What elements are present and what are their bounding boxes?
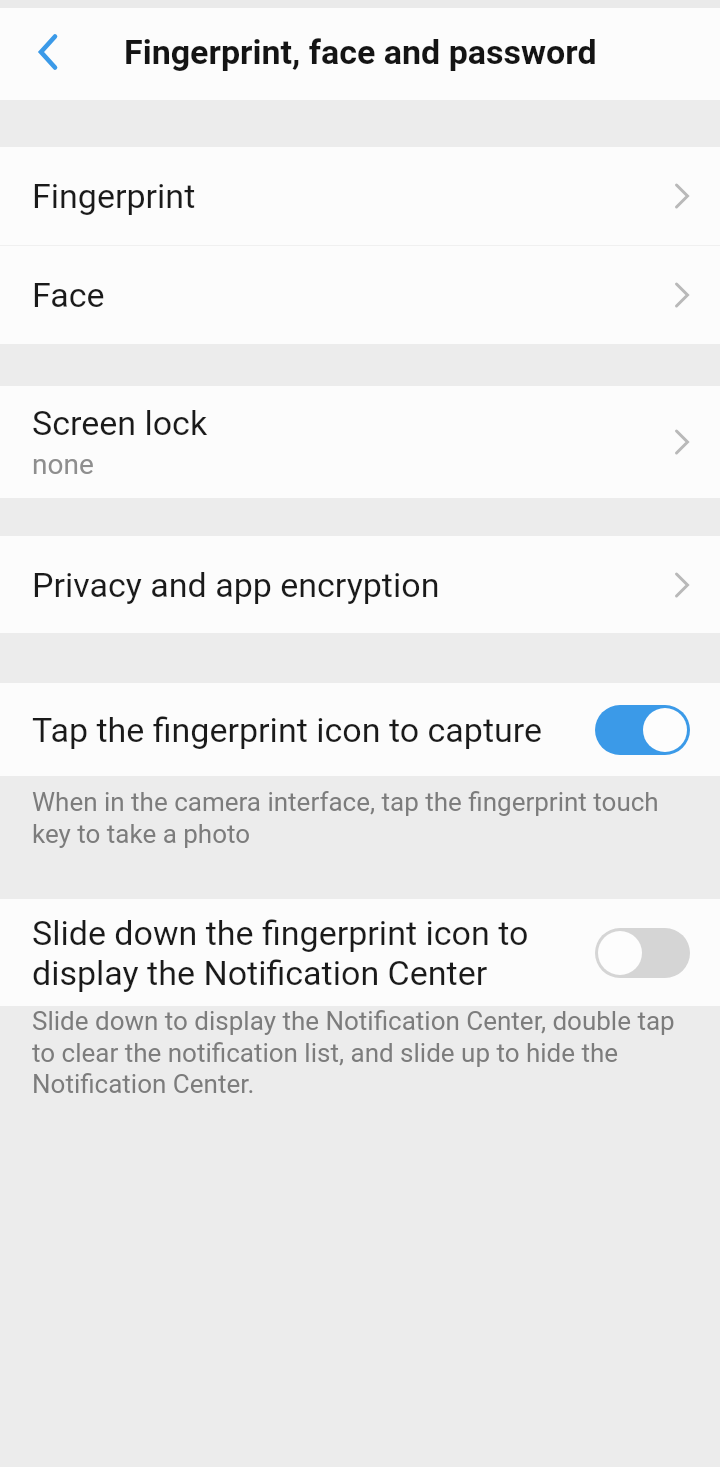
button[interactable]: Face	[0, 246, 720, 344]
staticText: Fingerprint, face and password	[124, 32, 597, 72]
staticText: Screen lock	[32, 403, 208, 443]
button[interactable]: Tap the fingerprint icon to capture	[0, 683, 720, 776]
staticText: Slide down to display the Notification C…	[32, 1006, 680, 1099]
staticText: Fingerprint	[32, 176, 196, 216]
button[interactable]	[595, 705, 690, 755]
button[interactable]: Slide down the fingerprint icon to displ…	[0, 899, 720, 1006]
staticText: Slide down the fingerprint icon to displ…	[32, 913, 595, 993]
button[interactable]	[595, 928, 690, 978]
staticText: Tap the fingerprint icon to capture	[32, 710, 595, 750]
staticText: When in the camera interface, tap the fi…	[32, 787, 680, 849]
staticText: Privacy and app encryption	[32, 565, 440, 605]
button[interactable]: Screen lock	[0, 386, 720, 498]
button[interactable]: Fingerprint	[0, 147, 720, 245]
button[interactable]: Privacy and app encryption	[0, 536, 720, 633]
staticText: none	[32, 448, 94, 481]
button[interactable]	[24, 28, 72, 76]
staticText: Face	[32, 275, 105, 315]
